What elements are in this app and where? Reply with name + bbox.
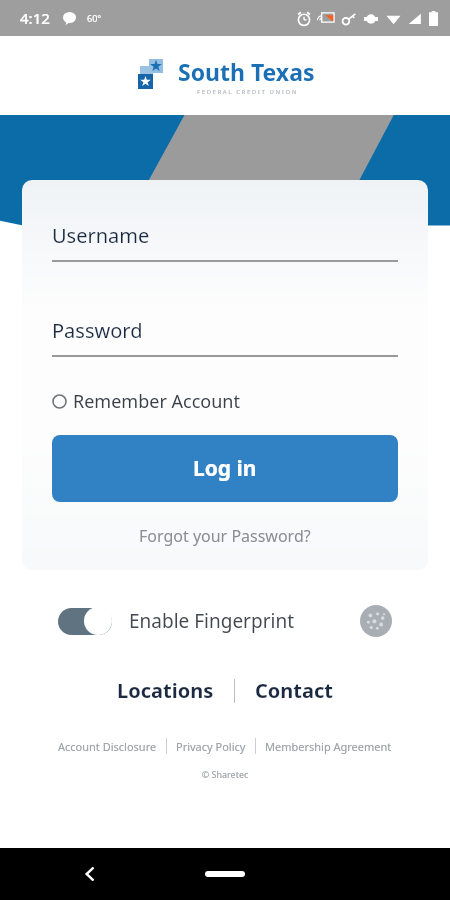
button[interactable]: Log in: [52, 435, 398, 502]
button[interactable]: Back: [78, 862, 102, 886]
staticText: 60°: [87, 12, 102, 24]
button[interactable]: Fingerprint: [360, 605, 392, 637]
staticText: Password: [52, 317, 143, 344]
staticText: Username: [52, 222, 150, 249]
staticText: © Sharetec: [0, 768, 450, 780]
staticText: Membership Agreement: [265, 739, 392, 754]
button[interactable]: Privacy Policy: [176, 739, 246, 754]
button[interactable]: Account Disclosure: [58, 739, 157, 754]
staticText: Privacy Policy: [176, 739, 246, 754]
button[interactable]: Username: [52, 222, 398, 262]
button[interactable]: Home: [205, 871, 245, 877]
button[interactable]: Forgot your Password?: [52, 525, 398, 547]
staticText: 4:12: [20, 8, 50, 28]
staticText: Enable Fingerprint: [129, 608, 294, 634]
staticText: South Texas: [178, 56, 315, 87]
button[interactable]: Membership Agreement: [265, 739, 392, 754]
staticText: Contact: [255, 677, 333, 704]
button[interactable]: Password: [52, 317, 398, 357]
button[interactable]: Contact: [255, 677, 333, 704]
staticText: Remember Account: [73, 389, 240, 414]
button[interactable]: Enable Fingerprint toggle: [58, 606, 112, 636]
staticText: Forgot your Password?: [139, 525, 311, 547]
button[interactable]: Locations: [117, 677, 214, 704]
staticText: Account Disclosure: [58, 739, 157, 754]
staticText: Locations: [117, 677, 214, 704]
button[interactable]: Remember Account: [52, 389, 240, 414]
staticText: Log in: [193, 454, 257, 483]
staticText: F E D E R A L C R E D I T U N I O N: [197, 88, 297, 96]
